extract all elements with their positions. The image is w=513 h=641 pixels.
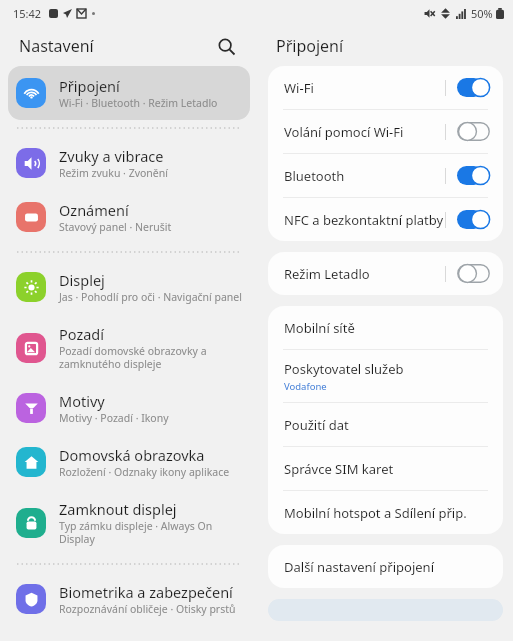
staticText: Další nastavení připojení [284, 558, 434, 576]
staticText: Připojení [59, 76, 120, 96]
button[interactable]: Správce SIM karet [268, 447, 503, 490]
staticText: Motivy · Pozadí · Ikony [59, 411, 169, 425]
button[interactable] [457, 166, 490, 185]
button[interactable]: Domovská obrazovka [0, 435, 258, 489]
button[interactable]: Zvuky a vibrace [0, 136, 258, 190]
button[interactable]: Volání pomocí Wi-Fi [268, 110, 503, 153]
staticText: Wi-Fi · Bluetooth · Režim Letadlo [59, 96, 218, 110]
staticText: Rozložení · Odznaky ikony aplikace [59, 465, 230, 479]
staticText: Oznámení [59, 200, 129, 220]
button[interactable]: Další nastavení připojení [268, 545, 503, 588]
staticText: Připojení [276, 35, 344, 57]
staticText: Jas · Pohodlí pro oči · Navigační panel [59, 290, 242, 304]
staticText: Biometrika a zabezpečení [59, 582, 233, 602]
staticText: Použití dat [284, 416, 349, 434]
staticText: Správce SIM karet [284, 460, 394, 478]
staticText: 50% [471, 6, 493, 21]
staticText: Zamknout displej [59, 499, 177, 519]
button[interactable]: Displej [0, 260, 258, 314]
button[interactable]: Pozadí [0, 314, 258, 381]
staticText: Motivy [59, 391, 105, 411]
staticText: Stavový panel · Nerušit [59, 220, 172, 234]
staticText: Displej [59, 270, 105, 290]
button[interactable] [457, 122, 490, 141]
button[interactable]: Motivy [0, 381, 258, 435]
staticText: Wi-Fi [284, 79, 445, 97]
button[interactable]: Biometrika a zabezpečení [0, 572, 258, 626]
staticText: Volání pomocí Wi-Fi [284, 123, 445, 141]
staticText: Pozadí domovské obrazovky a zamknutého d… [59, 344, 250, 371]
button[interactable]: Mobilní sítě [268, 306, 503, 349]
button[interactable]: Připojení [8, 66, 250, 120]
button[interactable] [457, 264, 490, 283]
button[interactable]: Oznámení [0, 190, 258, 244]
staticText: 15:42 [13, 6, 42, 21]
button[interactable]: Mobilní hotspot a Sdílení přip. [268, 491, 503, 534]
staticText: Poskytovatel služeb [284, 360, 404, 378]
staticText: Domovská obrazovka [59, 445, 205, 465]
button[interactable]: Wi-Fi [268, 66, 503, 109]
staticText: Rozpoznávání obličeje · Otisky prstů [59, 602, 236, 616]
staticText: Nastavení [19, 35, 94, 57]
button[interactable]: NFC a bezkontaktní platby [268, 198, 503, 241]
button[interactable]: Poskytovatel služeb [268, 350, 503, 402]
staticText: Bluetooth [284, 167, 445, 185]
button[interactable] [457, 78, 490, 97]
staticText: Mobilní sítě [284, 319, 355, 337]
button[interactable]: Hledat [211, 31, 241, 61]
button[interactable] [457, 210, 490, 229]
staticText: Pozadí [59, 324, 105, 344]
staticText: Typ zámku displeje · Always On Display [59, 519, 250, 546]
staticText: Režim zvuku · Zvonění [59, 166, 168, 180]
button[interactable]: Režim Letadlo [268, 252, 503, 295]
staticText: Vodafone [284, 380, 327, 393]
staticText: Mobilní hotspot a Sdílení přip. [284, 504, 467, 522]
button[interactable]: Bluetooth [268, 154, 503, 197]
button[interactable]: Použití dat [268, 403, 503, 446]
button[interactable]: Zamknout displej [0, 489, 258, 556]
staticText: Režim Letadlo [284, 265, 445, 283]
staticText: Zvuky a vibrace [59, 146, 164, 166]
staticText: NFC a bezkontaktní platby [284, 211, 445, 229]
